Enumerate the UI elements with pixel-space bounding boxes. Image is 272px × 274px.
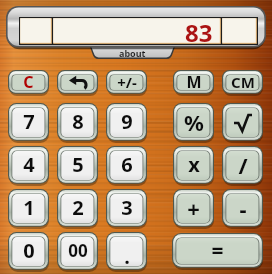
staticText: M xyxy=(186,71,202,93)
button[interactable]: 5 xyxy=(57,146,98,185)
button[interactable]: - xyxy=(222,189,263,228)
staticText: 00 xyxy=(68,239,88,262)
staticText: + xyxy=(187,193,200,223)
button[interactable]: about xyxy=(88,41,177,59)
button[interactable]: 8 xyxy=(57,103,98,142)
button[interactable]: 0 xyxy=(8,232,49,271)
button[interactable]: x xyxy=(173,146,214,185)
button[interactable]: 1 xyxy=(8,189,49,228)
staticText: 4 xyxy=(23,151,35,178)
button[interactable]: CM xyxy=(222,70,263,95)
staticText: about xyxy=(119,47,146,59)
button[interactable]: 6 xyxy=(106,146,147,185)
button[interactable]: C xyxy=(8,70,49,95)
staticText: 1 xyxy=(23,194,35,221)
staticText: 5 xyxy=(72,151,84,178)
staticText: % xyxy=(184,107,204,137)
staticText: 83 xyxy=(185,16,213,44)
button[interactable]: Square root xyxy=(222,103,263,142)
staticText: / xyxy=(238,150,248,180)
button[interactable]: 00 xyxy=(57,232,98,271)
staticText: 0 xyxy=(23,237,35,264)
button[interactable]: M xyxy=(173,70,214,95)
button[interactable]: 9 xyxy=(106,103,147,142)
staticText: = xyxy=(211,236,224,265)
button[interactable]: +/- xyxy=(106,70,147,95)
staticText: 2 xyxy=(72,194,84,221)
staticText: +/- xyxy=(117,72,137,92)
button[interactable]: 3 xyxy=(106,189,147,228)
button[interactable]: 7 xyxy=(8,103,49,142)
button[interactable]: 2 xyxy=(57,189,98,228)
staticText: 7 xyxy=(23,108,35,135)
staticText: C xyxy=(23,71,34,93)
button[interactable]: . xyxy=(106,232,147,271)
staticText: CM xyxy=(231,72,255,92)
button[interactable]: Backspace xyxy=(57,70,98,95)
button[interactable]: 4 xyxy=(8,146,49,185)
staticText: 3 xyxy=(121,194,133,221)
button[interactable]: / xyxy=(222,146,263,185)
staticText: 9 xyxy=(121,108,133,135)
staticText: 6 xyxy=(121,151,133,178)
button[interactable]: = xyxy=(172,233,263,269)
staticText: - xyxy=(239,193,247,223)
staticText: . xyxy=(124,243,130,270)
button[interactable]: + xyxy=(173,189,214,228)
button[interactable]: % xyxy=(173,103,214,142)
staticText: x xyxy=(188,151,200,178)
staticText: 8 xyxy=(72,108,84,135)
